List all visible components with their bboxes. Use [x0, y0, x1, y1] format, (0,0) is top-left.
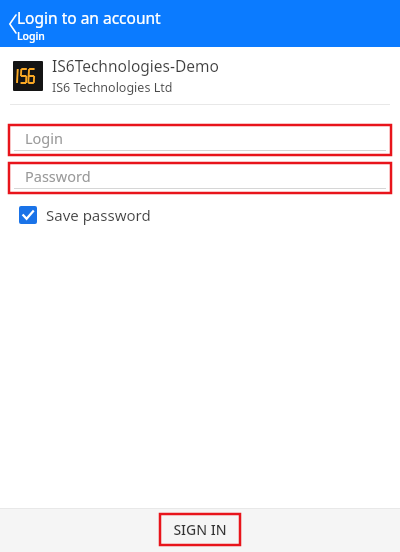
- button[interactable]: Password: [9, 163, 391, 193]
- staticText: IS6Technologies-Demo: [52, 55, 219, 76]
- staticText: SIGN IN: [173, 520, 227, 539]
- button[interactable]: SIGN IN: [160, 514, 240, 545]
- staticText: Login: [17, 29, 45, 43]
- button[interactable]: Back: [2, 4, 24, 44]
- staticText: IS6 Technologies Ltd: [52, 79, 173, 96]
- button[interactable]: IS6Technologies-Demo: [0, 47, 400, 104]
- staticText: Save password: [46, 205, 151, 225]
- staticText: Password: [25, 166, 91, 186]
- staticText: Login: [25, 128, 63, 148]
- button[interactable]: Save password: [19, 202, 151, 228]
- button[interactable]: Login: [9, 125, 391, 155]
- staticText: Login to an account: [17, 7, 161, 28]
